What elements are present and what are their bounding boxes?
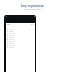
staticText: Tidy up your tasks quickly bbox=[24, 9, 41, 11]
button[interactable] bbox=[7, 28, 35, 30]
button[interactable] bbox=[7, 34, 35, 36]
button[interactable] bbox=[7, 42, 35, 44]
button[interactable] bbox=[7, 38, 35, 40]
button[interactable] bbox=[7, 30, 35, 32]
button[interactable] bbox=[7, 40, 35, 42]
button[interactable] bbox=[7, 32, 35, 34]
button[interactable] bbox=[7, 36, 35, 38]
button[interactable] bbox=[7, 44, 35, 46]
staticText: Easy organization bbox=[21, 4, 44, 8]
button[interactable] bbox=[7, 46, 35, 48]
